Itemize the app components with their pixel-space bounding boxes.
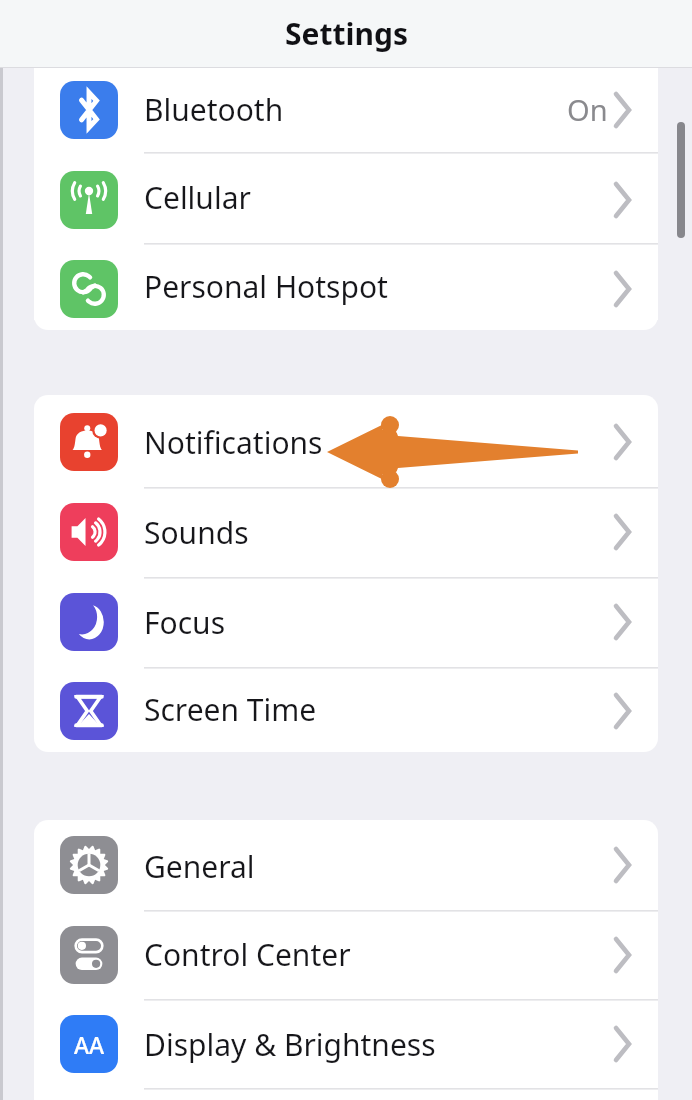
button[interactable]: Bluetooth xyxy=(34,66,658,152)
button[interactable]: General xyxy=(34,822,658,910)
staticText: Settings xyxy=(285,13,408,54)
staticText: Display & Brightness xyxy=(144,1024,436,1065)
staticText: Sounds xyxy=(144,512,249,553)
staticText: Focus xyxy=(144,602,226,643)
staticText: Control Center xyxy=(144,934,351,975)
button[interactable]: Control Center xyxy=(34,910,658,999)
staticText: Personal Hotspot xyxy=(144,266,388,307)
staticText: AA xyxy=(74,1029,105,1060)
staticText: Cellular xyxy=(144,177,251,218)
button[interactable]: Personal Hotspot xyxy=(34,243,658,330)
staticText: Bluetooth xyxy=(144,89,284,130)
staticText: General xyxy=(144,846,255,887)
staticText: Screen Time xyxy=(144,689,317,730)
staticText: Notifications xyxy=(144,422,323,463)
button[interactable]: Screen Time xyxy=(34,667,658,752)
button[interactable]: Notifications xyxy=(34,397,658,487)
button[interactable]: Sounds xyxy=(34,487,658,577)
staticText: On xyxy=(567,90,608,129)
button[interactable]: Focus xyxy=(34,577,658,667)
button[interactable]: Cellular xyxy=(34,152,658,243)
button[interactable]: Display & Brightness xyxy=(34,999,658,1089)
